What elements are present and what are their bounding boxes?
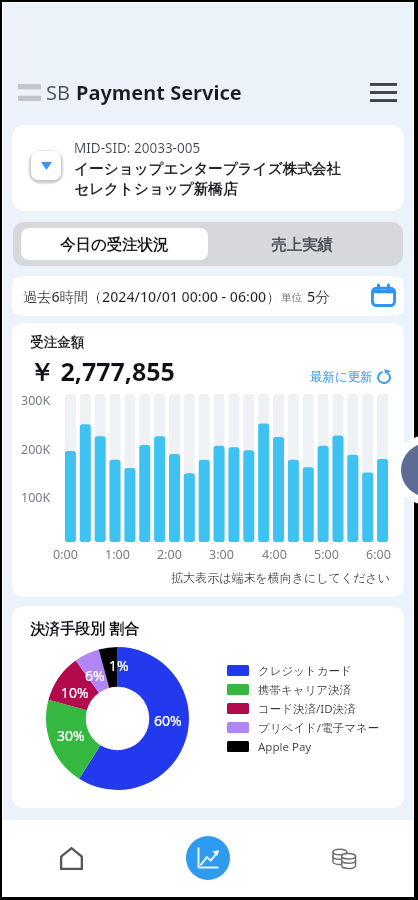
staticText: 受注金額 xyxy=(30,334,84,351)
staticText: 売上実績 xyxy=(271,235,333,254)
button[interactable]: 最新に更新 xyxy=(310,369,392,388)
button[interactable]: Analytics xyxy=(139,820,276,896)
staticText: MID-SID: 20033-005 xyxy=(74,139,201,157)
staticText: Apple Pay xyxy=(258,739,312,755)
staticText: 30% xyxy=(57,726,85,745)
staticText: 2:00 xyxy=(157,546,182,563)
staticText: コード決済/ID決済 xyxy=(258,701,356,717)
staticText: 4:00 xyxy=(262,546,287,563)
staticText: クレジットカード xyxy=(258,664,352,678)
staticText: 過去6時間（2024/10/01 00:00 - 06:00） xyxy=(23,287,281,306)
staticText: 100K xyxy=(21,489,51,506)
staticText: SB xyxy=(46,79,76,106)
staticText: 200K xyxy=(21,441,51,458)
staticText: 決済手段別 割合 xyxy=(30,618,139,638)
button[interactable]: Select date xyxy=(368,281,398,311)
button[interactable]: Payments xyxy=(276,820,413,896)
staticText: 携帯キャリア決済 xyxy=(258,683,352,697)
staticText: 拡大表示は端末を横向きにしてください xyxy=(12,570,390,585)
staticText: 10% xyxy=(61,683,89,702)
staticText: 今日の受注状況 xyxy=(60,235,169,254)
staticText: プリペイド/電子マネー xyxy=(258,720,380,736)
button[interactable]: Menu xyxy=(360,69,406,115)
staticText: 0:00 xyxy=(53,546,78,563)
staticText: 6:00 xyxy=(366,546,391,563)
staticText: 300K xyxy=(21,392,51,409)
staticText: イーショップエンタープライズ株式会社 xyxy=(74,160,341,178)
button[interactable]: 売上実績 xyxy=(208,228,395,260)
button[interactable]: 今日の受注状況 xyxy=(21,228,208,260)
staticText: 5分 xyxy=(307,286,330,306)
button[interactable]: Help xyxy=(401,443,418,497)
staticText: 6% xyxy=(85,666,105,685)
staticText: 3:00 xyxy=(209,546,234,563)
staticText: 60% xyxy=(154,711,182,730)
staticText: セレクトショップ新橋店 xyxy=(74,180,238,198)
staticText: Payment Service xyxy=(76,79,242,106)
button[interactable]: Home xyxy=(3,820,139,896)
staticText: 1:00 xyxy=(105,546,130,563)
button[interactable]: MID-SID: 20033-005 xyxy=(12,125,404,211)
staticText: 5:00 xyxy=(314,546,339,563)
staticText: 1% xyxy=(109,656,129,675)
staticText: 最新に更新 xyxy=(310,369,373,385)
staticText: ￥ 2,777,855 xyxy=(29,354,175,388)
staticText: 単位 xyxy=(281,291,302,304)
